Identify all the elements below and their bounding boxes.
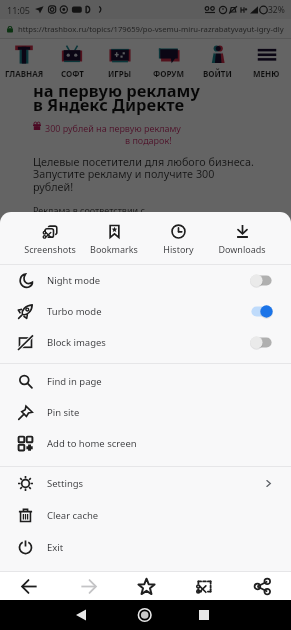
- button[interactable]: ИГРЫ: [96, 39, 144, 79]
- button[interactable]: Forward: [59, 572, 117, 600]
- button[interactable]: Screenshot: [175, 572, 233, 600]
- staticText: ГЛАВНАЯ: [5, 68, 44, 79]
- staticText: ИГРЫ: [108, 68, 132, 79]
- staticText: Screenshots: [24, 243, 76, 255]
- staticText: https://trashbox.ru/topics/179659/po-vse…: [18, 24, 284, 34]
- button[interactable]: History: [146, 212, 210, 264]
- staticText: Clear cache: [47, 509, 99, 522]
- button[interactable]: Downloads: [210, 212, 274, 264]
- staticText: 11:05: [7, 4, 31, 16]
- staticText: Turbo mode: [47, 305, 102, 318]
- staticText: History: [163, 243, 194, 255]
- staticText: Settings: [47, 477, 84, 490]
- staticText: МЕНЮ: [253, 68, 280, 79]
- staticText: Bookmarks: [90, 243, 138, 255]
- staticText: ФОРУМ: [153, 68, 184, 79]
- staticText: 300 рублей на первую рекламу: [45, 122, 181, 134]
- staticText: Реклама в соответствии с: [33, 204, 145, 216]
- staticText: Block images: [47, 336, 106, 349]
- button[interactable]: Pin site: [0, 397, 291, 428]
- button[interactable]: Exit: [0, 531, 291, 563]
- staticText: ВОЙТИ: [203, 68, 232, 79]
- button[interactable]: ГЛАВНАЯ: [0, 39, 48, 79]
- button[interactable]: СОФТ: [48, 39, 96, 79]
- button[interactable]: Add to home screen: [0, 428, 291, 459]
- button[interactable]: Settings: [0, 467, 291, 499]
- button[interactable]: Screenshots: [18, 212, 82, 264]
- button[interactable]: Back: [0, 572, 59, 600]
- staticText: 32%: [268, 4, 285, 16]
- button[interactable]: ВОЙТИ: [193, 39, 242, 79]
- staticText: в подарок!: [125, 134, 172, 146]
- staticText: Night mode: [47, 274, 101, 287]
- staticText: Pin site: [47, 406, 80, 419]
- button[interactable]: ФОРУМ: [144, 39, 193, 79]
- button[interactable]: Find in page: [0, 366, 291, 397]
- button[interactable]: Night mode: [0, 265, 291, 296]
- button[interactable]: Share: [233, 572, 291, 600]
- staticText: на первую рекламу в Яндекс Директе: [33, 79, 200, 115]
- button[interactable]: Block images: [0, 327, 291, 358]
- button[interactable]: Clear cache: [0, 499, 291, 531]
- staticText: Downloads: [218, 243, 266, 255]
- staticText: Exit: [47, 541, 64, 554]
- button[interactable]: Turbo mode: [0, 296, 291, 327]
- staticText: Add to home screen: [47, 437, 137, 450]
- staticText: Целевые посетители для любого бизнеса. З…: [33, 154, 254, 194]
- button[interactable]: Bookmarks: [82, 212, 146, 264]
- staticText: Find in page: [47, 375, 102, 388]
- button[interactable]: МЕНЮ: [242, 39, 291, 79]
- staticText: СОФТ: [61, 68, 84, 79]
- button[interactable]: Bookmark: [117, 572, 175, 600]
